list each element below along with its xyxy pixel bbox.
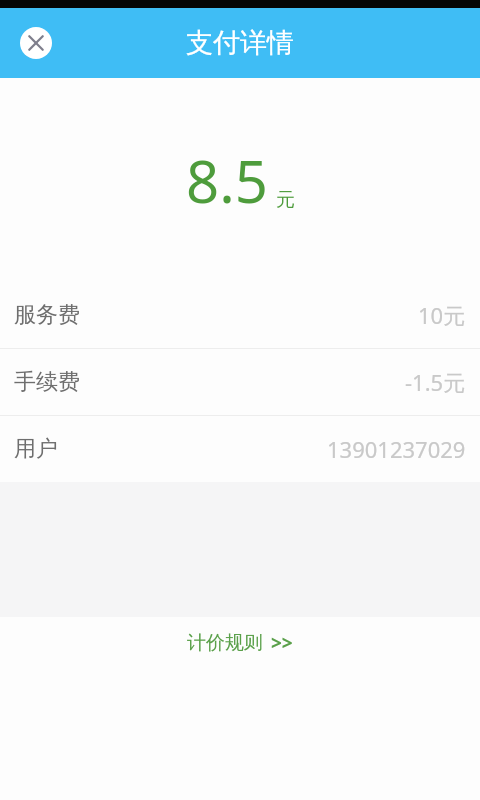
staticText: 服务费 <box>14 301 80 329</box>
button[interactable]: Close <box>12 19 60 67</box>
button[interactable]: 服务费 <box>0 282 480 348</box>
staticText: 计价规则 <box>187 631 263 655</box>
staticText: 用户 <box>14 435 58 463</box>
staticText: 手续费 <box>14 368 80 396</box>
button[interactable]: 用户 <box>0 416 480 482</box>
staticText: 支付详情 <box>186 26 294 60</box>
staticText: 10元 <box>418 300 466 330</box>
staticText: 8.5 <box>186 141 268 220</box>
staticText: -1.5元 <box>405 367 466 397</box>
staticText: >> <box>271 630 293 656</box>
button[interactable]: 计价规则 <box>175 624 305 662</box>
staticText: 元 <box>276 188 295 212</box>
button[interactable]: 手续费 <box>0 349 480 415</box>
staticText: 13901237029 <box>327 434 466 464</box>
